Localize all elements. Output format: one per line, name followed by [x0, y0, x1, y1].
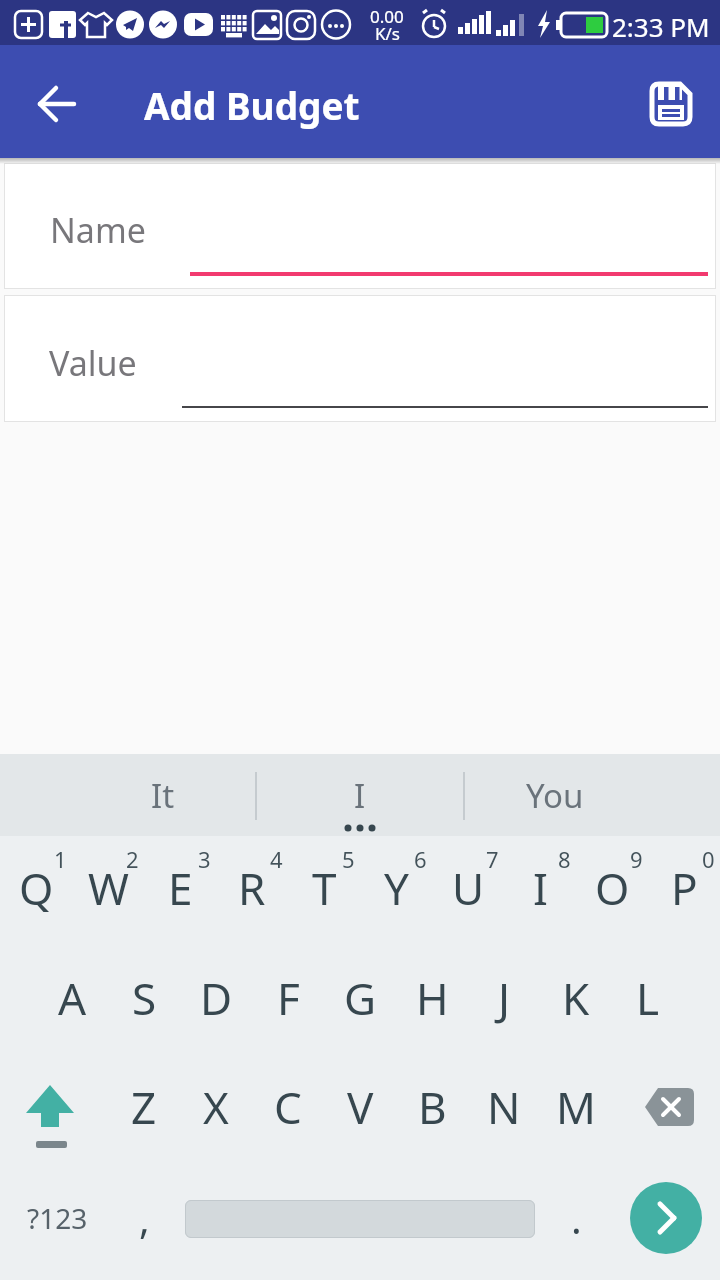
- staticText: .: [571, 1191, 582, 1245]
- staticText: Q: [19, 858, 54, 918]
- button[interactable]: Y: [360, 848, 432, 928]
- button[interactable]: M: [540, 1067, 612, 1147]
- button[interactable]: I: [260, 754, 460, 836]
- staticText: R: [238, 858, 266, 918]
- button[interactable]: Name: [4, 163, 716, 289]
- button[interactable]: [638, 72, 702, 136]
- button[interactable]: N: [468, 1067, 540, 1147]
- button[interactable]: R: [216, 848, 288, 928]
- button[interactable]: S: [108, 958, 180, 1038]
- staticText: I: [533, 858, 548, 918]
- staticText: K/s: [375, 22, 400, 45]
- button[interactable]: It: [63, 754, 263, 836]
- staticText: 2:33 PM: [612, 9, 710, 44]
- button[interactable]: [185, 1200, 535, 1238]
- staticText: M: [556, 1077, 596, 1137]
- staticText: ?123: [27, 1199, 88, 1237]
- staticText: A: [58, 968, 87, 1028]
- staticText: 3: [198, 844, 211, 870]
- staticText: W: [88, 858, 129, 918]
- button[interactable]: ,: [112, 1182, 176, 1254]
- button[interactable]: [14, 1071, 86, 1143]
- button[interactable]: Value: [4, 295, 716, 422]
- staticText: L: [636, 968, 660, 1028]
- button[interactable]: L: [612, 958, 684, 1038]
- staticText: Name: [50, 207, 146, 253]
- staticText: T: [312, 858, 337, 918]
- staticText: I: [354, 773, 366, 818]
- button[interactable]: K: [540, 958, 612, 1038]
- staticText: H: [416, 968, 449, 1028]
- button[interactable]: Q: [0, 848, 72, 928]
- button[interactable]: J: [468, 958, 540, 1038]
- button[interactable]: W: [72, 848, 144, 928]
- button[interactable]: X: [180, 1067, 252, 1147]
- button[interactable]: Z: [108, 1067, 180, 1147]
- staticText: 7: [486, 844, 499, 870]
- staticText: O: [595, 858, 630, 918]
- staticText: 2: [126, 844, 139, 870]
- button[interactable]: You: [455, 754, 655, 836]
- staticText: 5: [342, 844, 355, 870]
- staticText: J: [498, 968, 511, 1028]
- staticText: 0: [702, 844, 715, 870]
- button[interactable]: P: [648, 848, 720, 928]
- staticText: 6: [414, 844, 427, 870]
- staticText: U: [452, 858, 485, 918]
- staticText: Add Budget: [144, 80, 360, 130]
- staticText: C: [274, 1077, 302, 1137]
- staticText: You: [526, 773, 584, 818]
- button[interactable]: B: [396, 1067, 468, 1147]
- button[interactable]: T: [288, 848, 360, 928]
- staticText: B: [418, 1077, 447, 1137]
- staticText: 0.00: [370, 5, 404, 28]
- staticText: It: [151, 773, 175, 818]
- button[interactable]: .: [544, 1182, 608, 1254]
- staticText: G: [344, 968, 377, 1028]
- staticText: 8: [558, 844, 571, 870]
- button[interactable]: [633, 1071, 705, 1143]
- staticText: F: [277, 968, 300, 1028]
- staticText: X: [203, 1077, 229, 1137]
- staticText: N: [487, 1077, 521, 1137]
- staticText: Z: [131, 1077, 157, 1137]
- button[interactable]: A: [36, 958, 108, 1038]
- button[interactable]: H: [396, 958, 468, 1038]
- button[interactable]: G: [324, 958, 396, 1038]
- staticText: 9: [630, 844, 643, 870]
- button[interactable]: O: [576, 848, 648, 928]
- button[interactable]: E: [144, 848, 216, 928]
- button[interactable]: ?123: [17, 1188, 97, 1248]
- button[interactable]: D: [180, 958, 252, 1038]
- staticText: Value: [49, 340, 137, 386]
- button[interactable]: I: [504, 848, 576, 928]
- staticText: D: [200, 968, 233, 1028]
- button[interactable]: [25, 72, 89, 136]
- staticText: ,: [139, 1191, 150, 1245]
- staticText: K: [562, 968, 590, 1028]
- staticText: Y: [384, 858, 409, 918]
- button[interactable]: C: [252, 1067, 324, 1147]
- button[interactable]: F: [252, 958, 324, 1038]
- staticText: 1: [54, 844, 67, 870]
- staticText: P: [671, 858, 698, 918]
- staticText: E: [168, 858, 193, 918]
- staticText: V: [347, 1077, 374, 1137]
- button[interactable]: [630, 1182, 702, 1254]
- button[interactable]: U: [432, 848, 504, 928]
- staticText: 4: [270, 844, 283, 870]
- staticText: S: [132, 968, 157, 1028]
- button[interactable]: V: [324, 1067, 396, 1147]
